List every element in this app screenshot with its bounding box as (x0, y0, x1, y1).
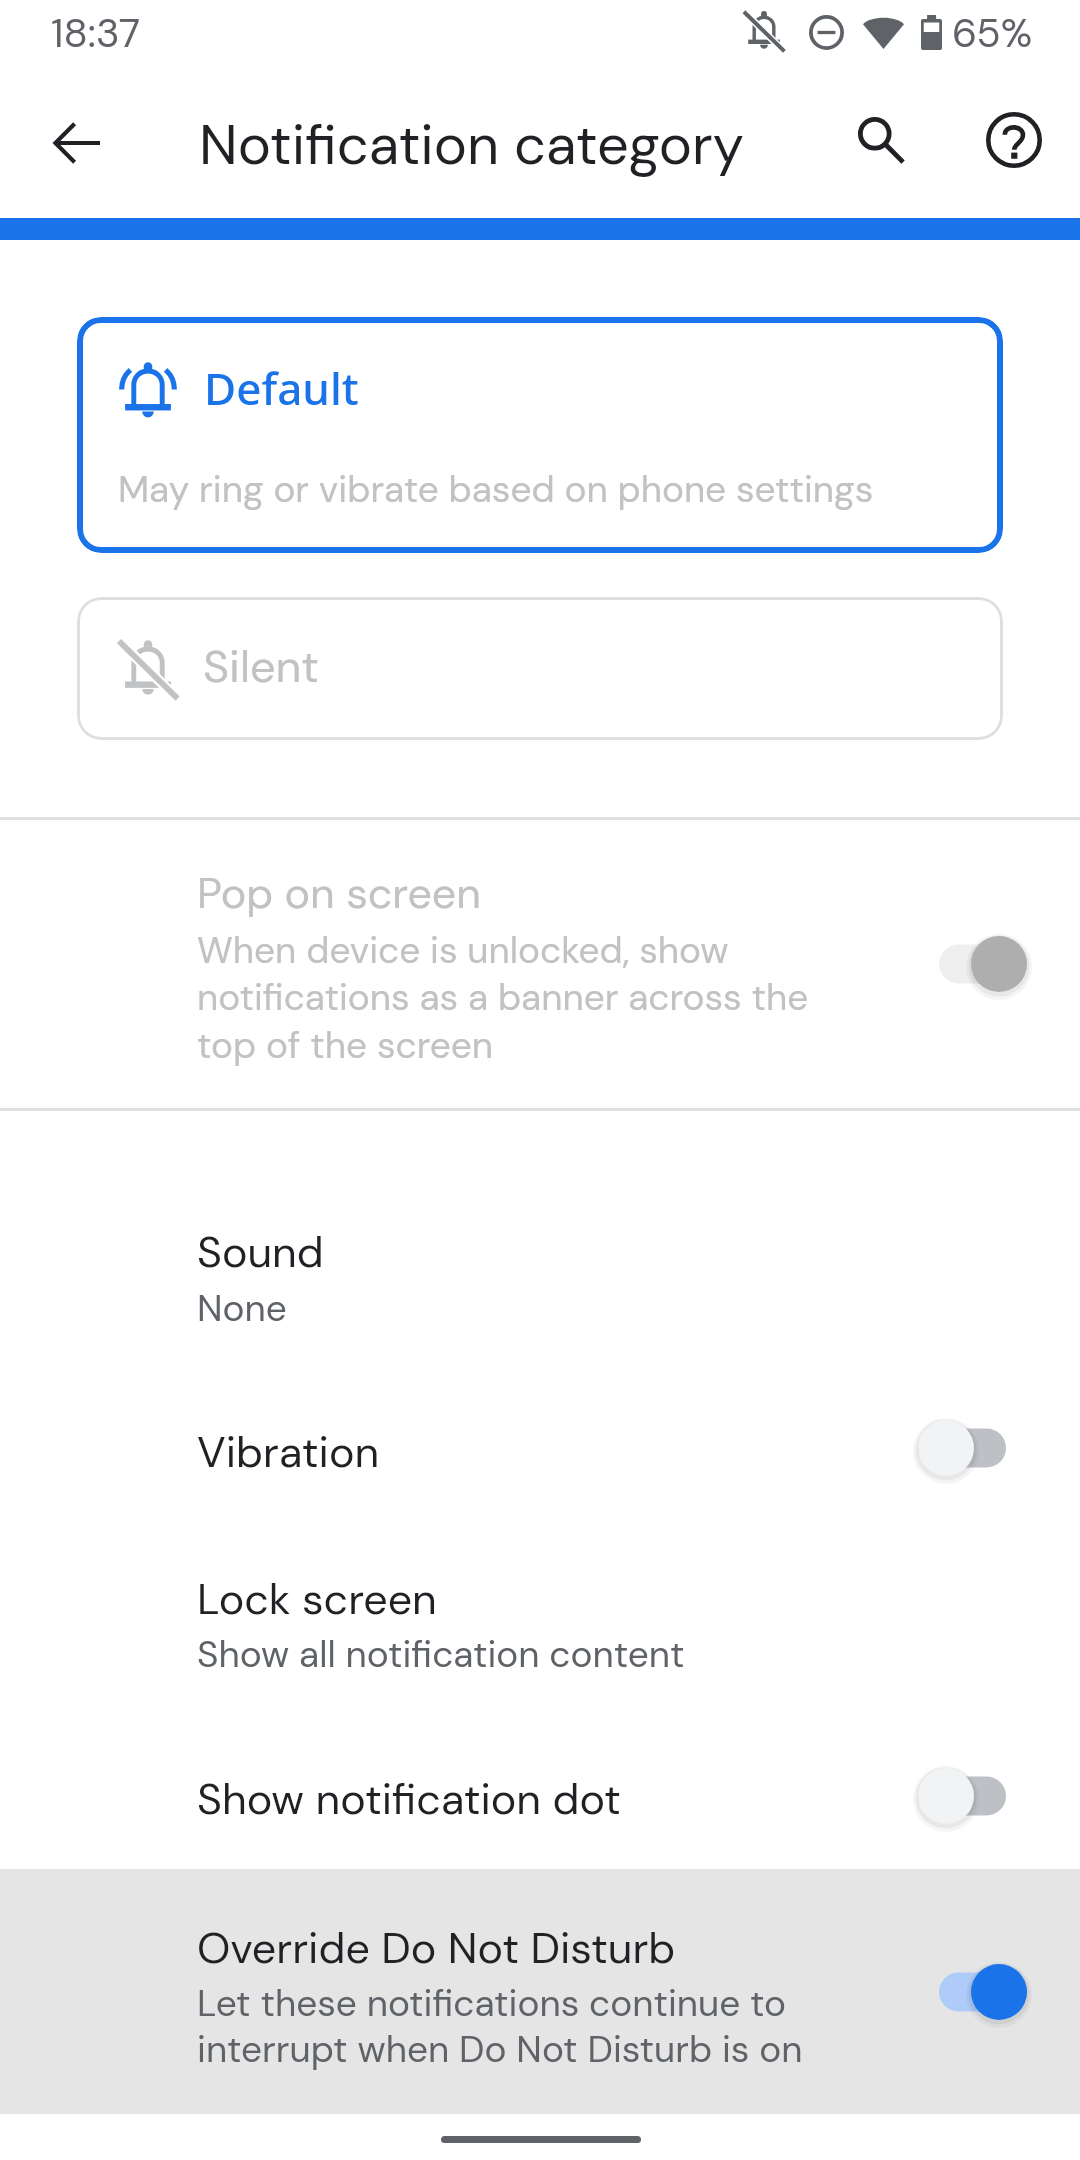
button[interactable]: Pop on screen (0, 820, 1080, 1108)
staticText: Override Do Not Disturb (197, 1920, 676, 1976)
button[interactable]: On (909, 1952, 1057, 2032)
button[interactable]: Search (837, 96, 925, 184)
button[interactable]: Navigate up (33, 99, 121, 187)
staticText: Silent (203, 637, 319, 696)
staticText: Lock screen (197, 1571, 437, 1627)
staticText: Vibration (197, 1424, 380, 1480)
button[interactable]: Default (77, 317, 1003, 553)
staticText: May ring or vibrate based on phone setti… (118, 465, 874, 513)
staticText: 65% (952, 7, 1033, 59)
button[interactable]: Override Do Not Disturb (0, 1869, 1080, 2114)
staticText: Pop on screen (197, 865, 481, 921)
button[interactable]: Off (888, 1756, 1036, 1836)
button[interactable]: Vibration (0, 1380, 1080, 1530)
staticText: Default (204, 358, 359, 418)
staticText: None (197, 1284, 287, 1332)
button[interactable]: On (909, 924, 1057, 1004)
button[interactable]: Show notification dot (0, 1740, 1080, 1869)
staticText: Show all notification content (197, 1630, 685, 1678)
staticText: Sound (197, 1224, 324, 1280)
button[interactable]: Help (970, 96, 1058, 184)
staticText: Let these notifications continue to inte… (197, 1979, 803, 2074)
staticText: Show notification dot (197, 1771, 621, 1827)
staticText: 18:37 (51, 7, 141, 59)
button[interactable]: Off (888, 1408, 1036, 1488)
button[interactable]: Silent (77, 597, 1003, 740)
button[interactable]: Lock screen (0, 1530, 1080, 1740)
button[interactable]: Sound (0, 1160, 1080, 1380)
staticText: When device is unlocked, show notificati… (197, 926, 809, 1070)
staticText: Notification category (199, 108, 744, 181)
